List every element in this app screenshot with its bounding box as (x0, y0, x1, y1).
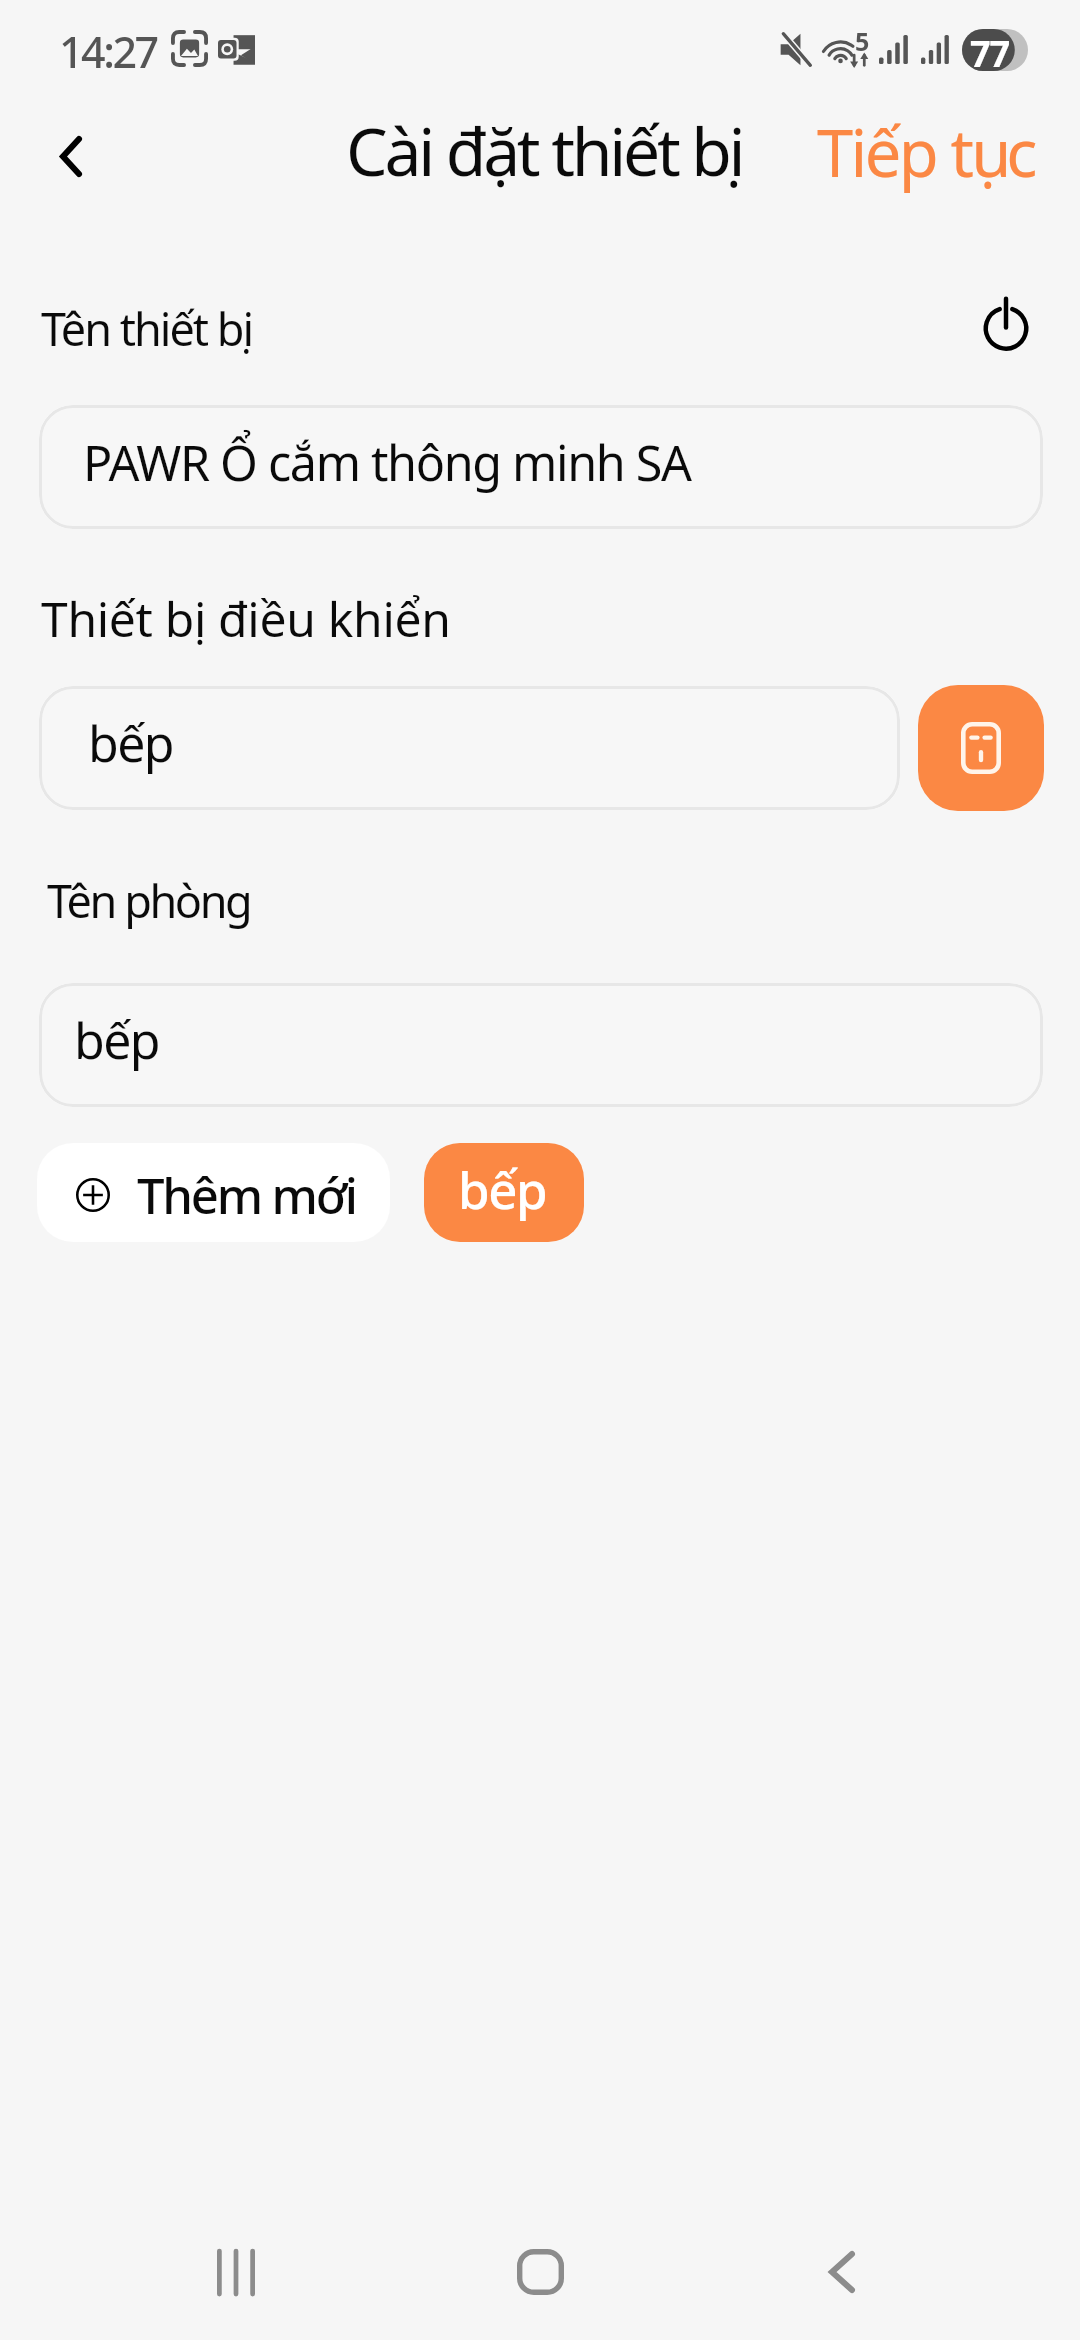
button[interactable]: Home (470, 2210, 610, 2334)
button[interactable]: Back (26, 111, 116, 201)
staticText: bếp (74, 1006, 159, 1074)
staticText: 14:27 (59, 22, 157, 81)
staticText: Cài đặt thiết bị (346, 105, 740, 195)
staticText: Thiết bị điều khiển (41, 586, 451, 651)
button[interactable]: Thêm mới (37, 1143, 390, 1242)
staticText: bếp (88, 709, 173, 777)
staticText: bếp (458, 1154, 547, 1223)
staticText: 5 (855, 24, 870, 58)
button[interactable]: bếp (39, 983, 1043, 1107)
staticText: Thêm mới (137, 1162, 356, 1229)
staticText: PAWR Ổ cắm thông minh SA (83, 429, 691, 495)
button[interactable]: PAWR Ổ cắm thông minh SA (39, 405, 1043, 529)
button[interactable]: Back (772, 2210, 912, 2334)
button[interactable]: Power (970, 287, 1042, 359)
button[interactable]: Tiếp tục (777, 95, 1053, 205)
staticText: Tiếp tục (817, 108, 1035, 197)
button[interactable]: bếp (39, 686, 900, 810)
button[interactable]: Chọn thiết bị (918, 685, 1044, 811)
staticText: 77 (970, 29, 1010, 69)
button[interactable]: bếp (424, 1143, 584, 1242)
button[interactable]: Recents (166, 2210, 306, 2334)
staticText: Tên phòng (47, 870, 251, 931)
staticText: Tên thiết bị (41, 298, 251, 359)
